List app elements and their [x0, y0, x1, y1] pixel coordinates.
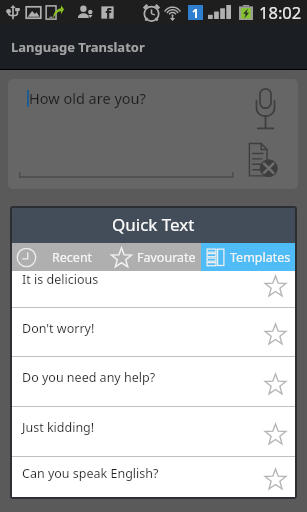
- staticText: Language Translator: [11, 38, 145, 56]
- staticText: Can you speak English?: [22, 465, 159, 482]
- button[interactable]: Can you speak English?: [12, 457, 295, 497]
- staticText: 18:02: [259, 1, 302, 23]
- button[interactable]: Templates: [201, 243, 295, 271]
- button[interactable]: Just kidding!: [12, 407, 295, 456]
- button[interactable]: Do you need any help?: [12, 357, 295, 406]
- button[interactable]: Don't worry!: [12, 308, 295, 356]
- staticText: Do you need any help?: [22, 369, 156, 386]
- button[interactable]: Favourate: [107, 243, 201, 271]
- button[interactable]: Clear text: [240, 138, 284, 182]
- staticText: It is delicious: [22, 271, 99, 288]
- button[interactable]: Recent: [12, 243, 107, 271]
- staticText: Just kidding!: [22, 419, 95, 436]
- button[interactable]: Voice input: [246, 84, 284, 134]
- staticText: How old are you?: [29, 88, 146, 108]
- staticText: Don't worry!: [22, 320, 95, 337]
- button[interactable]: It is delicious: [12, 271, 295, 307]
- staticText: Favourate: [137, 249, 196, 266]
- staticText: Recent: [52, 249, 93, 266]
- staticText: 1: [192, 5, 199, 20]
- staticText: Quick Text: [112, 213, 195, 236]
- staticText: Templates: [230, 249, 291, 266]
